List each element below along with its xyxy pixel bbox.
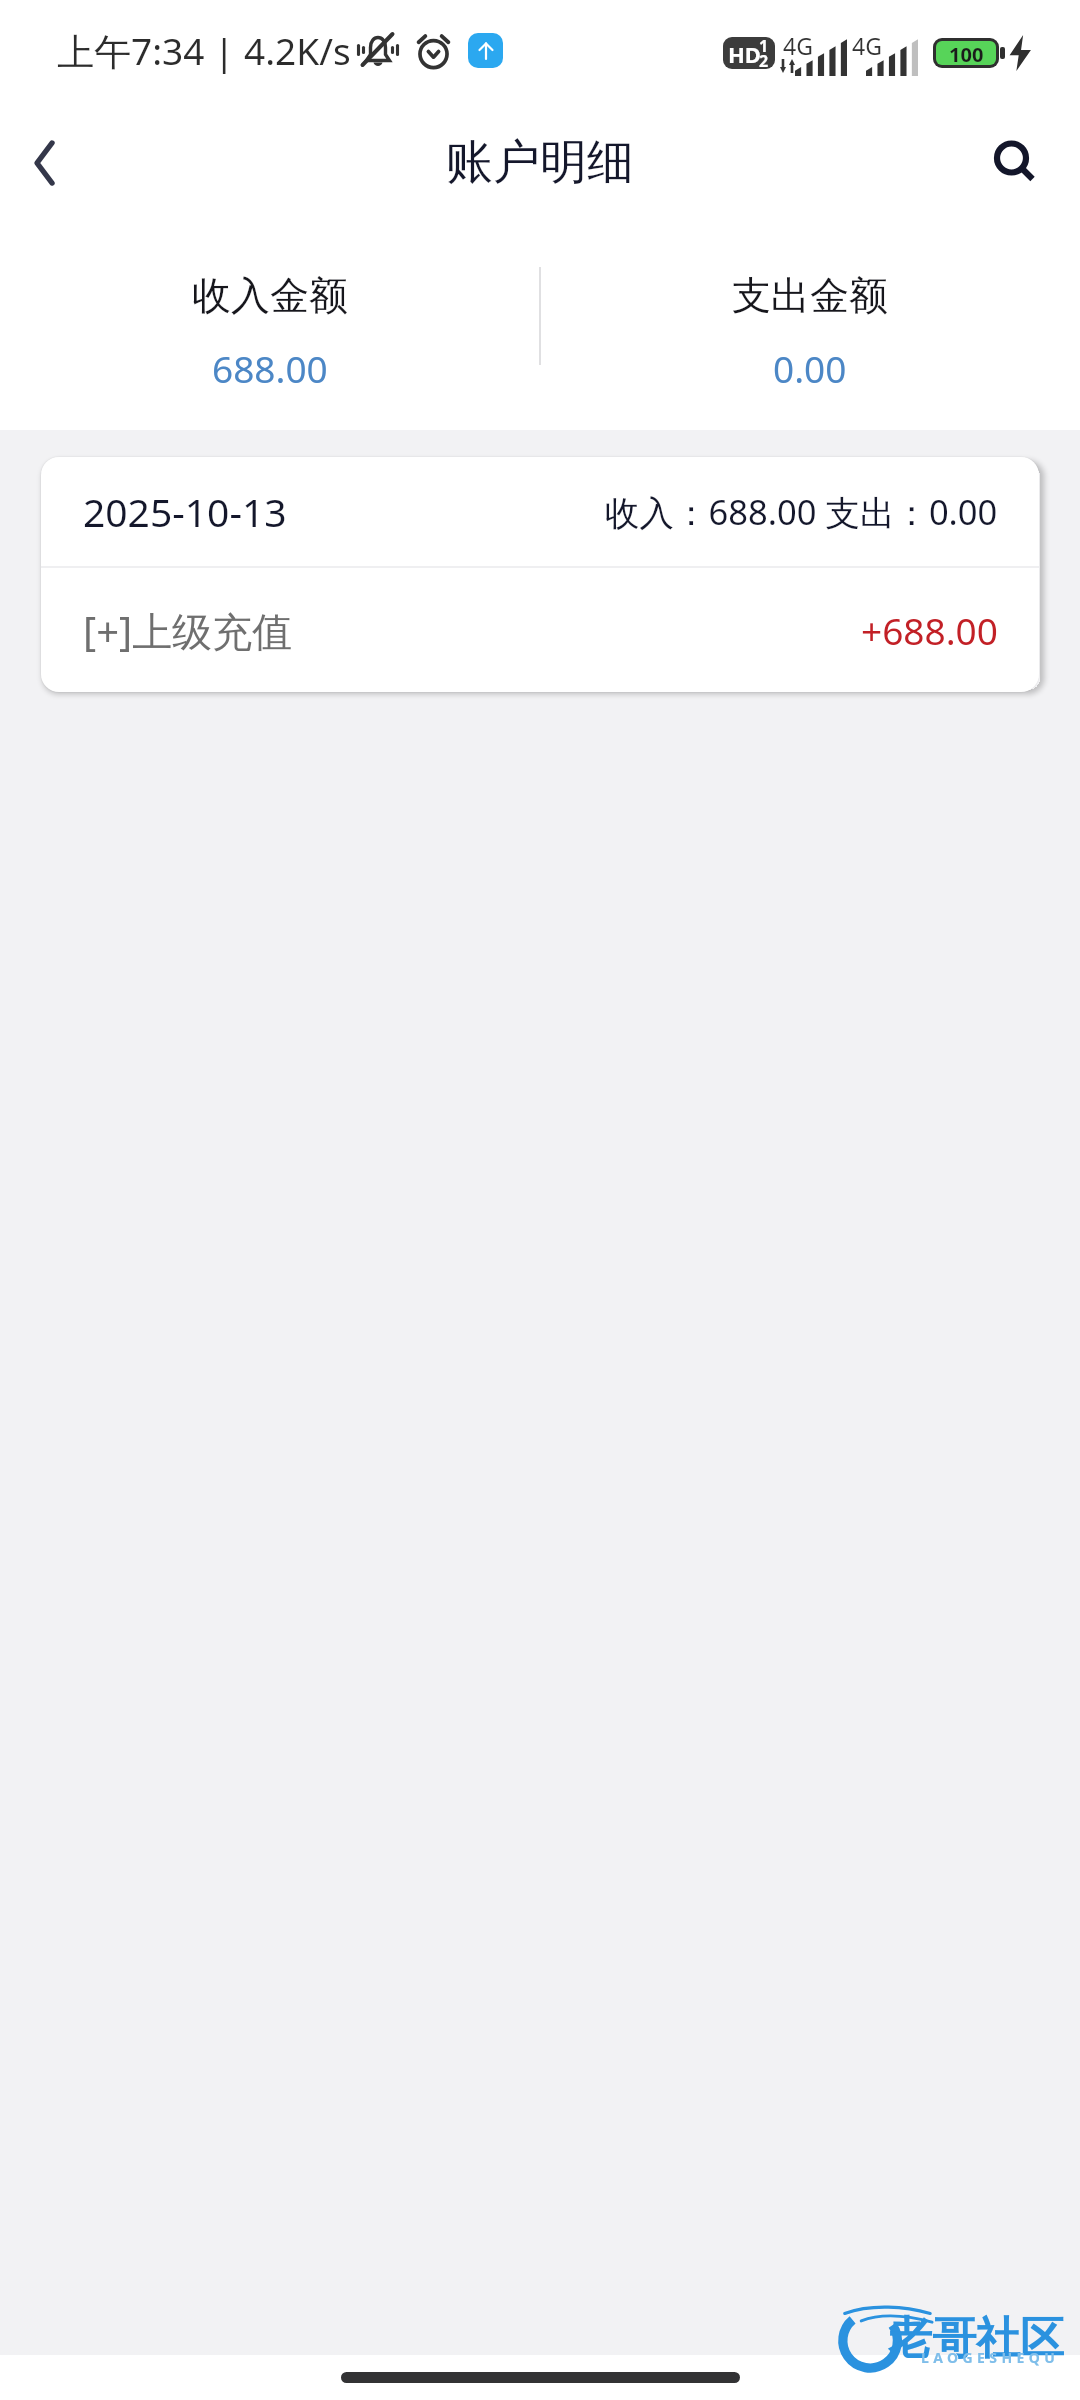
staticText: LAOGESHEQU bbox=[921, 2348, 1060, 2367]
button[interactable]: 2025-10-13 bbox=[41, 457, 1039, 566]
staticText: +688.00 bbox=[861, 605, 998, 655]
staticText: 4G bbox=[783, 30, 813, 61]
staticText: 支出金额 bbox=[732, 271, 888, 320]
staticText: 2 bbox=[759, 50, 769, 69]
button[interactable]: [+]上级充值 bbox=[41, 568, 1039, 692]
staticText: 4G bbox=[852, 30, 882, 61]
staticText: 100 bbox=[949, 41, 984, 65]
staticText: 688.00 bbox=[212, 343, 328, 393]
staticText: 0.00 bbox=[773, 343, 847, 393]
staticText: HD bbox=[728, 39, 761, 69]
staticText: 2025-10-13 bbox=[83, 485, 287, 538]
staticText: 收入金额 bbox=[192, 271, 348, 320]
staticText: 上午7:34 | 4.2K/s bbox=[57, 25, 351, 76]
staticText: 收入：688.00 支出：0.00 bbox=[605, 488, 998, 535]
staticText: [+]上级充值 bbox=[83, 603, 293, 658]
staticText: 账户明细 bbox=[446, 133, 634, 192]
button[interactable]: Search bbox=[967, 113, 1067, 213]
staticText: 1 bbox=[759, 37, 769, 57]
staticText: 老哥社区 bbox=[888, 2311, 1064, 2366]
button[interactable]: Back bbox=[0, 119, 88, 207]
